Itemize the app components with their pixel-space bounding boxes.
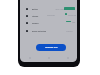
button[interactable]: Home [39,57,58,59]
button[interactable]: Battery [20,6,77,11]
staticText: Safe [72,21,76,23]
button[interactable]: Optimise now [36,44,66,51]
staticText: 100% 2 days left [55,8,68,10]
staticText: Storage [32,15,39,17]
staticText: Optimise now [45,46,58,49]
staticText: Optimised [47,14,55,16]
staticText: Device protection [32,30,47,32]
staticText: Battery [32,8,38,10]
staticText: Scanned [66,30,73,32]
button[interactable]: Device protection [20,28,77,33]
staticText: Memory [32,22,39,24]
button[interactable]: Recents [58,57,77,59]
button[interactable]: Storage [20,13,77,18]
button[interactable]: Memory [20,20,77,25]
staticText: 6.0/8.0 GB [68,14,76,16]
button[interactable]: Back [20,57,39,59]
